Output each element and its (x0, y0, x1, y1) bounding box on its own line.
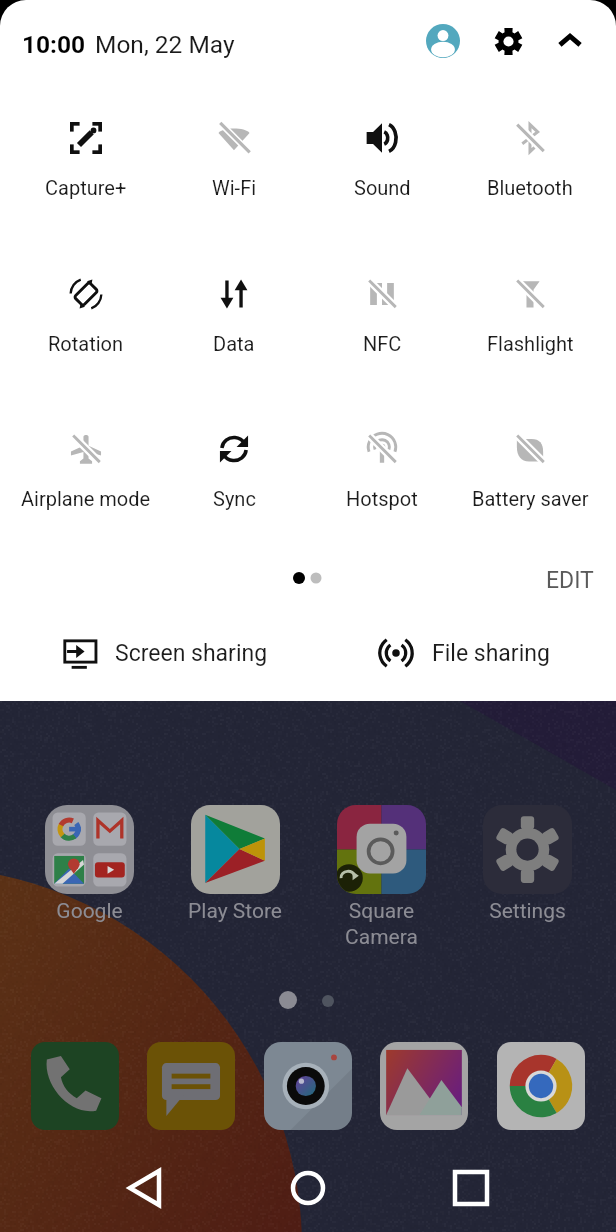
button[interactable]: Collapse (543, 14, 597, 68)
button[interactable]: Gallery (376, 1038, 472, 1134)
button[interactable]: File sharing (378, 620, 550, 686)
button[interactable]: Sync (160, 403, 308, 519)
button[interactable]: Phone (27, 1038, 123, 1134)
button[interactable]: Wi-Fi (160, 92, 308, 208)
staticText: Capture+ (45, 176, 127, 199)
staticText: Flashlight (487, 332, 574, 355)
button[interactable]: Hotspot (308, 403, 456, 519)
staticText: Battery saver (472, 487, 589, 510)
staticText: Data (213, 332, 255, 355)
staticText: NFC (363, 332, 402, 355)
button[interactable]: Back (113, 1156, 177, 1220)
staticText: Sound (354, 176, 411, 199)
staticText: Wi-Fi (212, 176, 257, 199)
staticText: Bluetooth (487, 176, 573, 199)
button[interactable]: NFC (308, 248, 456, 364)
staticText: Rotation (48, 332, 124, 355)
staticText: Settings (489, 899, 566, 924)
staticText: 10:00 (22, 30, 86, 59)
button[interactable]: Recents (439, 1156, 503, 1220)
button[interactable]: Capture+ (12, 92, 160, 208)
button[interactable]: Account (416, 14, 470, 68)
staticText: EDIT (546, 567, 594, 594)
button[interactable]: Chrome (493, 1038, 589, 1134)
staticText: Sync (213, 487, 256, 510)
staticText: Mon, 22 May (95, 30, 235, 59)
staticText: Google (56, 899, 123, 924)
button[interactable]: Google (31, 805, 147, 955)
staticText: Hotspot (346, 487, 418, 510)
button[interactable]: Flashlight (456, 248, 604, 364)
button[interactable]: Home (276, 1156, 340, 1220)
button[interactable]: Play Store (177, 805, 293, 955)
button[interactable]: Square Camera (323, 805, 439, 955)
button[interactable]: Messages (143, 1038, 239, 1134)
staticText: Screen sharing (115, 640, 268, 667)
button[interactable]: Rotation (12, 248, 160, 364)
button[interactable]: Screen sharing (61, 620, 268, 686)
button[interactable]: Airplane mode (12, 403, 160, 519)
staticText: Square Camera (345, 899, 418, 949)
staticText: File sharing (432, 640, 550, 667)
button[interactable]: Data (160, 248, 308, 364)
button[interactable]: EDIT (534, 554, 606, 606)
button[interactable]: Battery saver (456, 403, 604, 519)
button[interactable]: Bluetooth (456, 92, 604, 208)
button[interactable]: Settings (481, 14, 535, 68)
staticText: Play Store (188, 899, 282, 924)
button[interactable]: Camera (260, 1038, 356, 1134)
button[interactable]: Sound (308, 92, 456, 208)
button[interactable]: Settings (469, 805, 585, 955)
staticText: Airplane mode (21, 487, 151, 510)
